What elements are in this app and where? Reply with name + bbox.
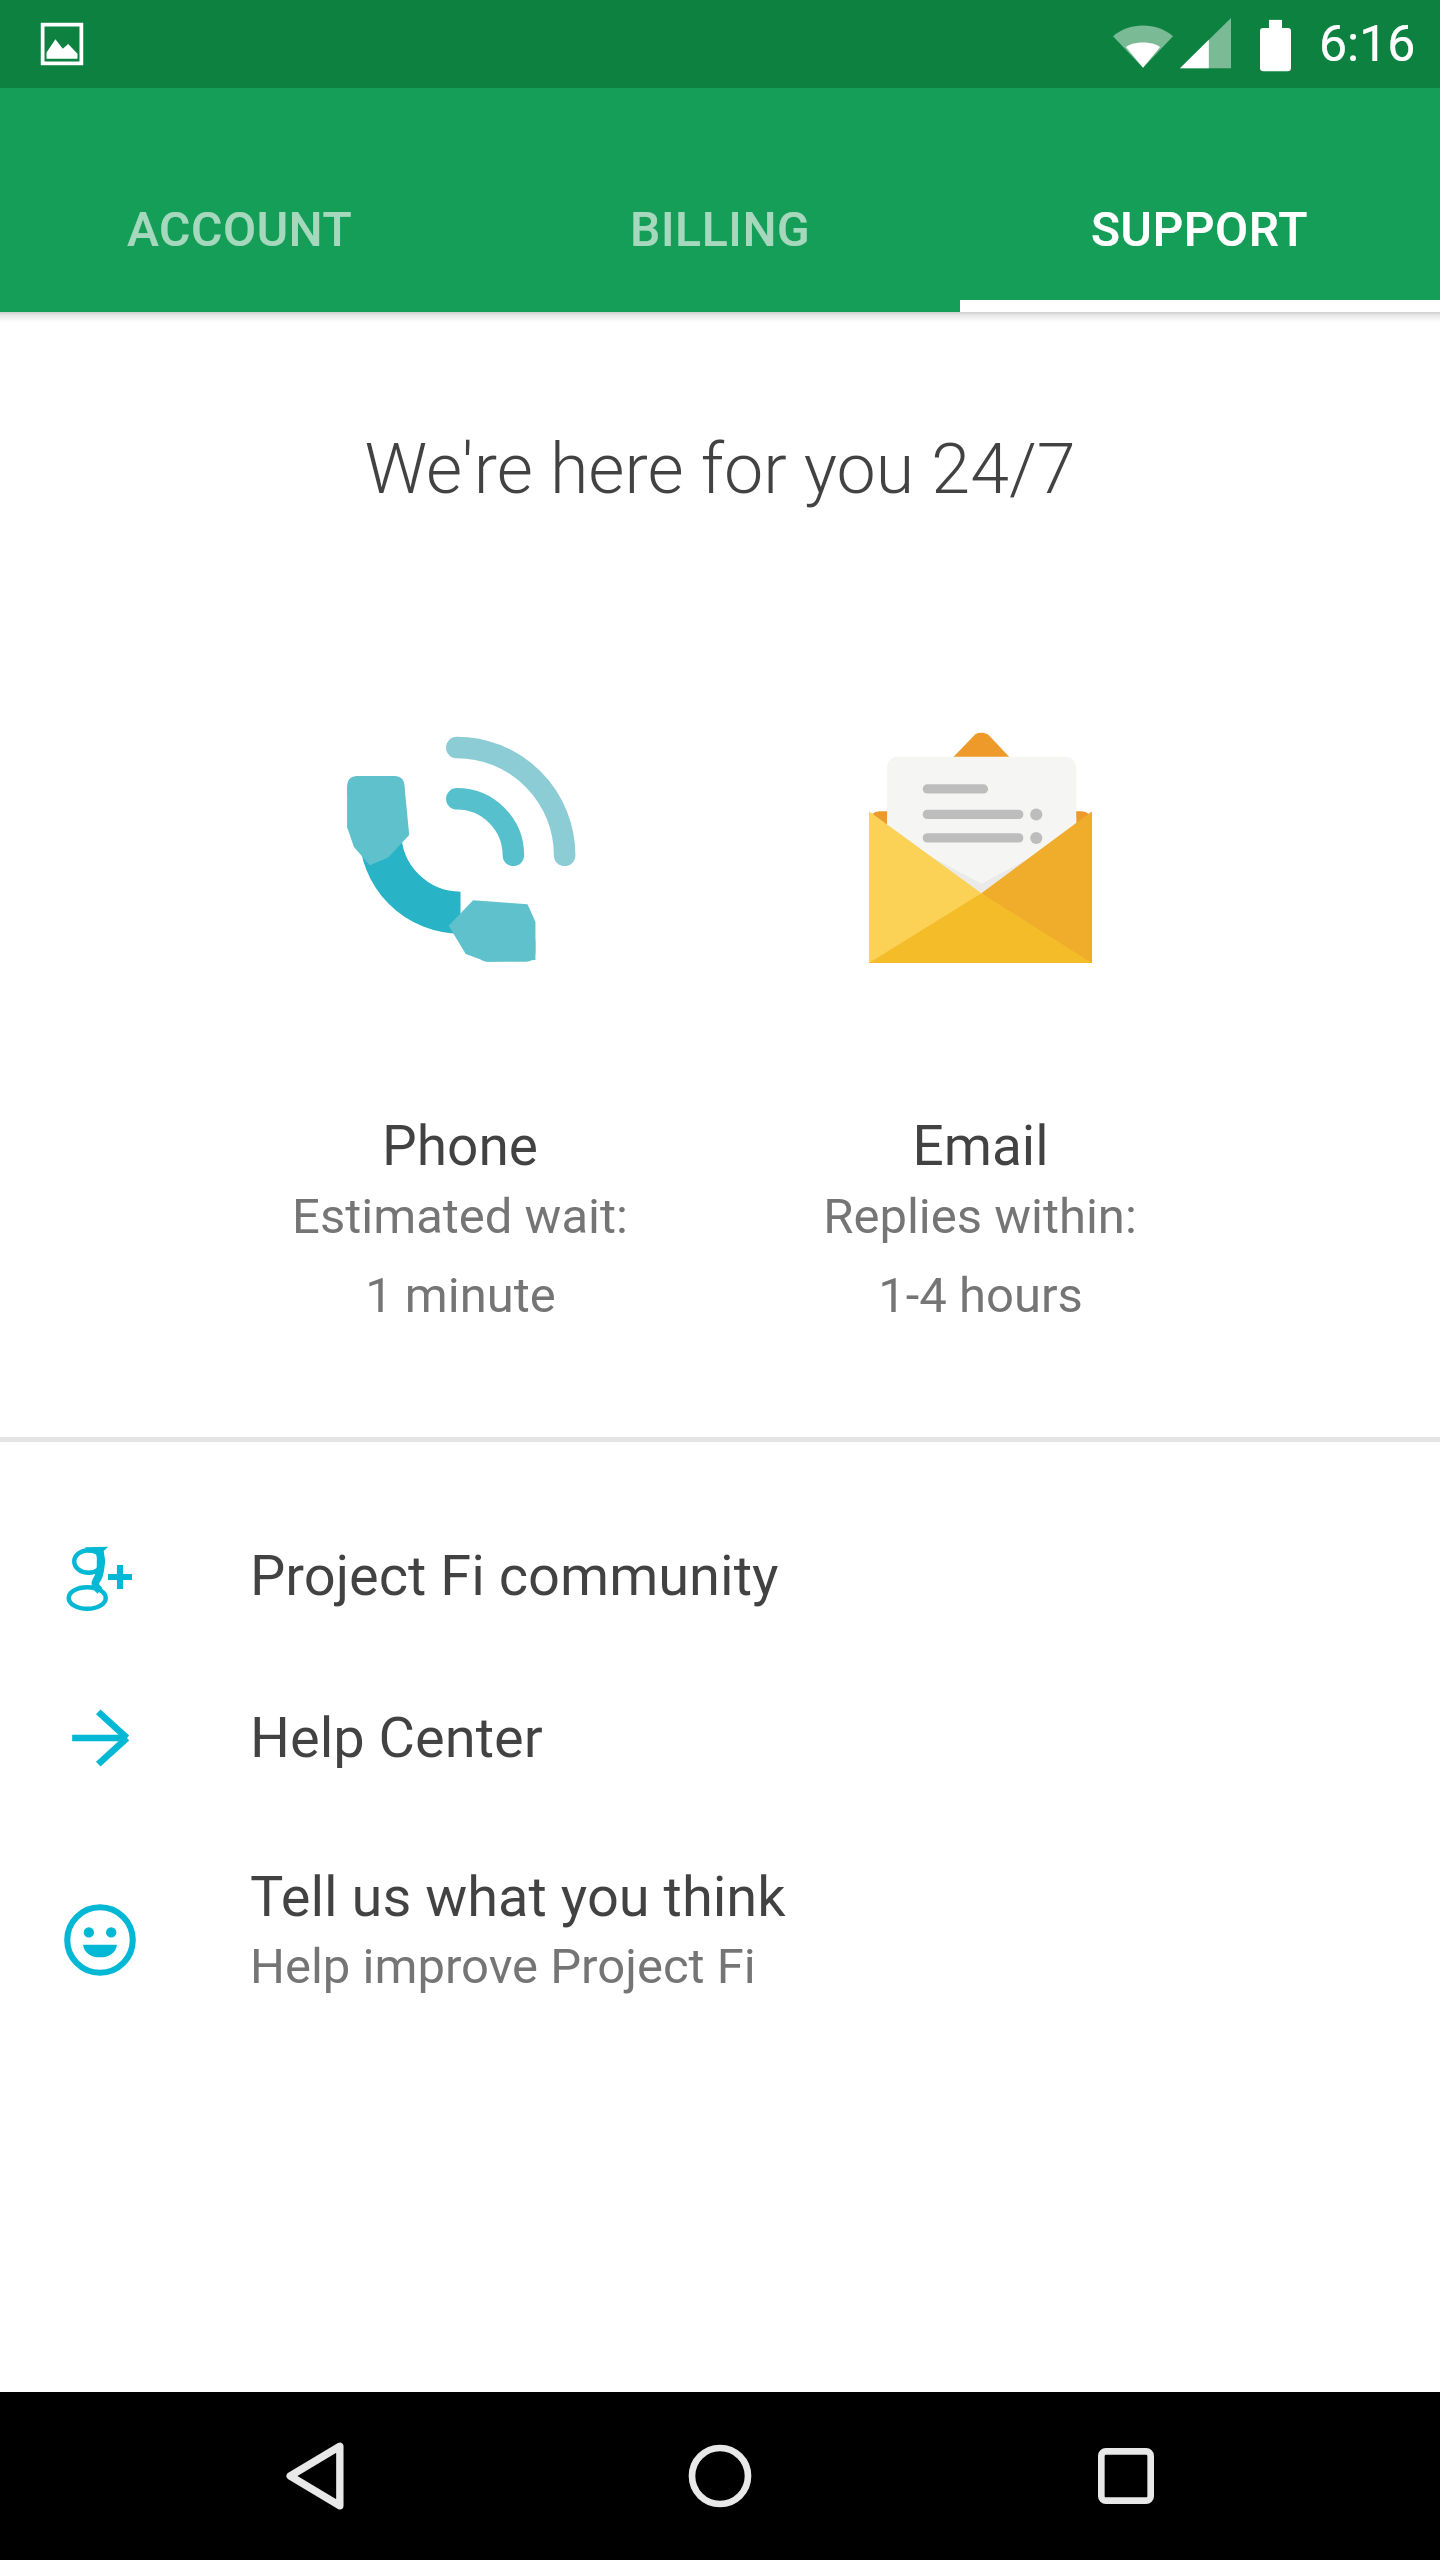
button[interactable]: SUPPORT: [960, 88, 1440, 312]
staticText: 1 minute: [365, 1267, 556, 1324]
staticText: Estimated wait:: [292, 1188, 628, 1245]
staticText: Help Center: [250, 1705, 543, 1771]
staticText: ACCOUNT: [127, 201, 353, 257]
button[interactable]: Project Fi community: [0, 1495, 1440, 1657]
button[interactable]: Tell us what you think: [0, 1829, 1440, 2029]
staticText: Tell us what you think: [250, 1864, 786, 1930]
staticText: Email: [912, 1114, 1049, 1178]
staticText: Replies within:: [823, 1188, 1137, 1245]
staticText: 1-4 hours: [878, 1267, 1083, 1324]
button[interactable]: Email: [720, 722, 1240, 1324]
staticText: Help improve Project Fi: [250, 1938, 756, 1995]
button[interactable]: Home: [640, 2396, 800, 2556]
button[interactable]: BILLING: [480, 88, 960, 312]
staticText: SUPPORT: [1091, 201, 1309, 257]
staticText: BILLING: [630, 201, 811, 257]
staticText: Phone: [382, 1114, 538, 1178]
staticText: We're here for you 24/7: [0, 428, 1440, 510]
staticText: 6:16: [1319, 15, 1416, 74]
button[interactable]: Help Center: [0, 1657, 1440, 1819]
button[interactable]: Phone: [200, 722, 720, 1324]
button[interactable]: ACCOUNT: [0, 88, 480, 312]
staticText: Project Fi community: [250, 1543, 779, 1609]
button[interactable]: Recent apps: [1046, 2396, 1206, 2556]
button[interactable]: Back: [235, 2396, 395, 2556]
